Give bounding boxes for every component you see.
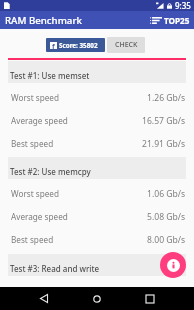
staticText: 5.08 Gb/s (147, 211, 186, 223)
button[interactable]: Test #3: Read and write (8, 254, 186, 276)
staticText: Test #3: Read and write (10, 263, 100, 274)
staticText: Best speed (11, 138, 54, 149)
staticText: Worst speed (11, 188, 60, 199)
button[interactable]: Average speed (8, 106, 186, 129)
button[interactable]: Test #2: Use memcpy (8, 157, 186, 179)
button[interactable]: CHECK (107, 37, 145, 53)
button[interactable]: Info (160, 252, 186, 278)
staticText: Score: 35802 (59, 41, 98, 50)
staticText: f (52, 42, 55, 49)
staticText: RAM Benchmark (5, 14, 82, 27)
staticText: Average speed (11, 211, 68, 222)
button[interactable]: Test #1: Use memset (8, 61, 186, 83)
staticText: CHECK (115, 40, 138, 50)
staticText: 8.00 Gb/s (147, 234, 186, 246)
button[interactable]: Worst speed (8, 83, 186, 106)
staticText: 9:35 (175, 0, 191, 11)
button[interactable]: Back (24, 287, 64, 310)
staticText: Best speed (11, 234, 54, 245)
button[interactable]: Home (77, 287, 117, 310)
staticText: Average speed (11, 115, 68, 126)
staticText: Worst speed (11, 92, 60, 103)
staticText: 16.57 Gb/s (142, 115, 186, 127)
button[interactable]: f (46, 38, 105, 52)
staticText: 1.06 Gb/s (147, 188, 186, 200)
staticText: 21.91 Gb/s (142, 138, 186, 150)
button[interactable]: Worst speed (8, 179, 186, 202)
button[interactable]: Best speed (8, 129, 186, 152)
staticText: 1.26 Gb/s (147, 92, 186, 104)
staticText: Test #1: Use memset (10, 70, 90, 81)
staticText: TOP25 (164, 15, 190, 26)
button[interactable]: Average speed (8, 202, 186, 225)
button[interactable]: TOP25 (149, 13, 191, 28)
button[interactable]: Best speed (8, 225, 186, 248)
staticText: Test #2: Use memcpy (10, 166, 91, 177)
button[interactable]: Recents (130, 287, 170, 310)
